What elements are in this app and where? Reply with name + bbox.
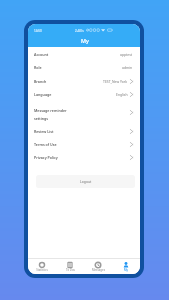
staticText: My: [81, 37, 89, 44]
staticText: To Dos: [66, 268, 75, 272]
button[interactable]: Role: [28, 61, 140, 74]
staticText: Logout: [80, 179, 92, 184]
staticText: settings: [34, 116, 49, 121]
button[interactable]: Privacy Policy: [28, 151, 140, 164]
button[interactable]: To Dos: [56, 259, 84, 274]
staticText: Messages: [92, 268, 105, 272]
button[interactable]: Review List: [28, 124, 140, 138]
staticText: apptest: [120, 52, 133, 57]
staticText: Message reminder: [34, 108, 67, 113]
button[interactable]: Logout: [36, 175, 135, 188]
staticText: Terms of Use: [34, 142, 57, 147]
staticText: Language: [34, 92, 52, 97]
button[interactable]: Terms of Use: [28, 138, 140, 151]
staticText: Branch: [34, 79, 47, 84]
button[interactable]: Statistics: [28, 259, 56, 274]
button[interactable]: Account: [28, 48, 140, 61]
staticText: TEST_New York: [103, 79, 128, 84]
staticText: Statistics: [36, 268, 48, 272]
button[interactable]: Message reminder: [28, 101, 140, 124]
button[interactable]: Language: [28, 88, 140, 101]
staticText: 2.4K/s: [75, 29, 84, 33]
staticText: Review List: [34, 129, 54, 134]
staticText: My: [124, 268, 128, 272]
button[interactable]: My: [112, 259, 140, 274]
staticText: Role: [34, 65, 42, 70]
staticText: English: [116, 92, 128, 97]
staticText: admin: [122, 65, 133, 70]
staticText: 14:50: [34, 29, 42, 33]
staticText: Account: [34, 52, 49, 57]
button[interactable]: Branch: [28, 74, 140, 88]
staticText: Privacy Policy: [34, 155, 58, 160]
button[interactable]: Messages: [84, 259, 112, 274]
